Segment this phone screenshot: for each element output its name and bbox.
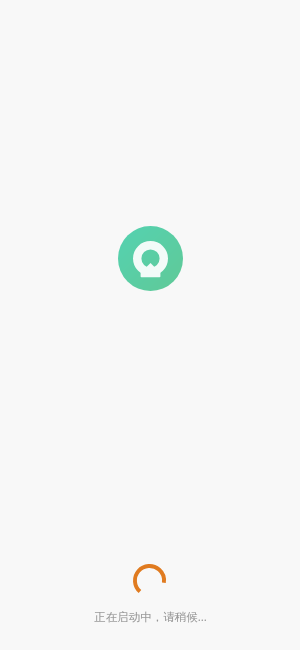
button[interactable]: App logo (118, 226, 183, 291)
other: Loading (133, 564, 166, 597)
staticText: 正在启动中，请稍候... (94, 609, 207, 625)
